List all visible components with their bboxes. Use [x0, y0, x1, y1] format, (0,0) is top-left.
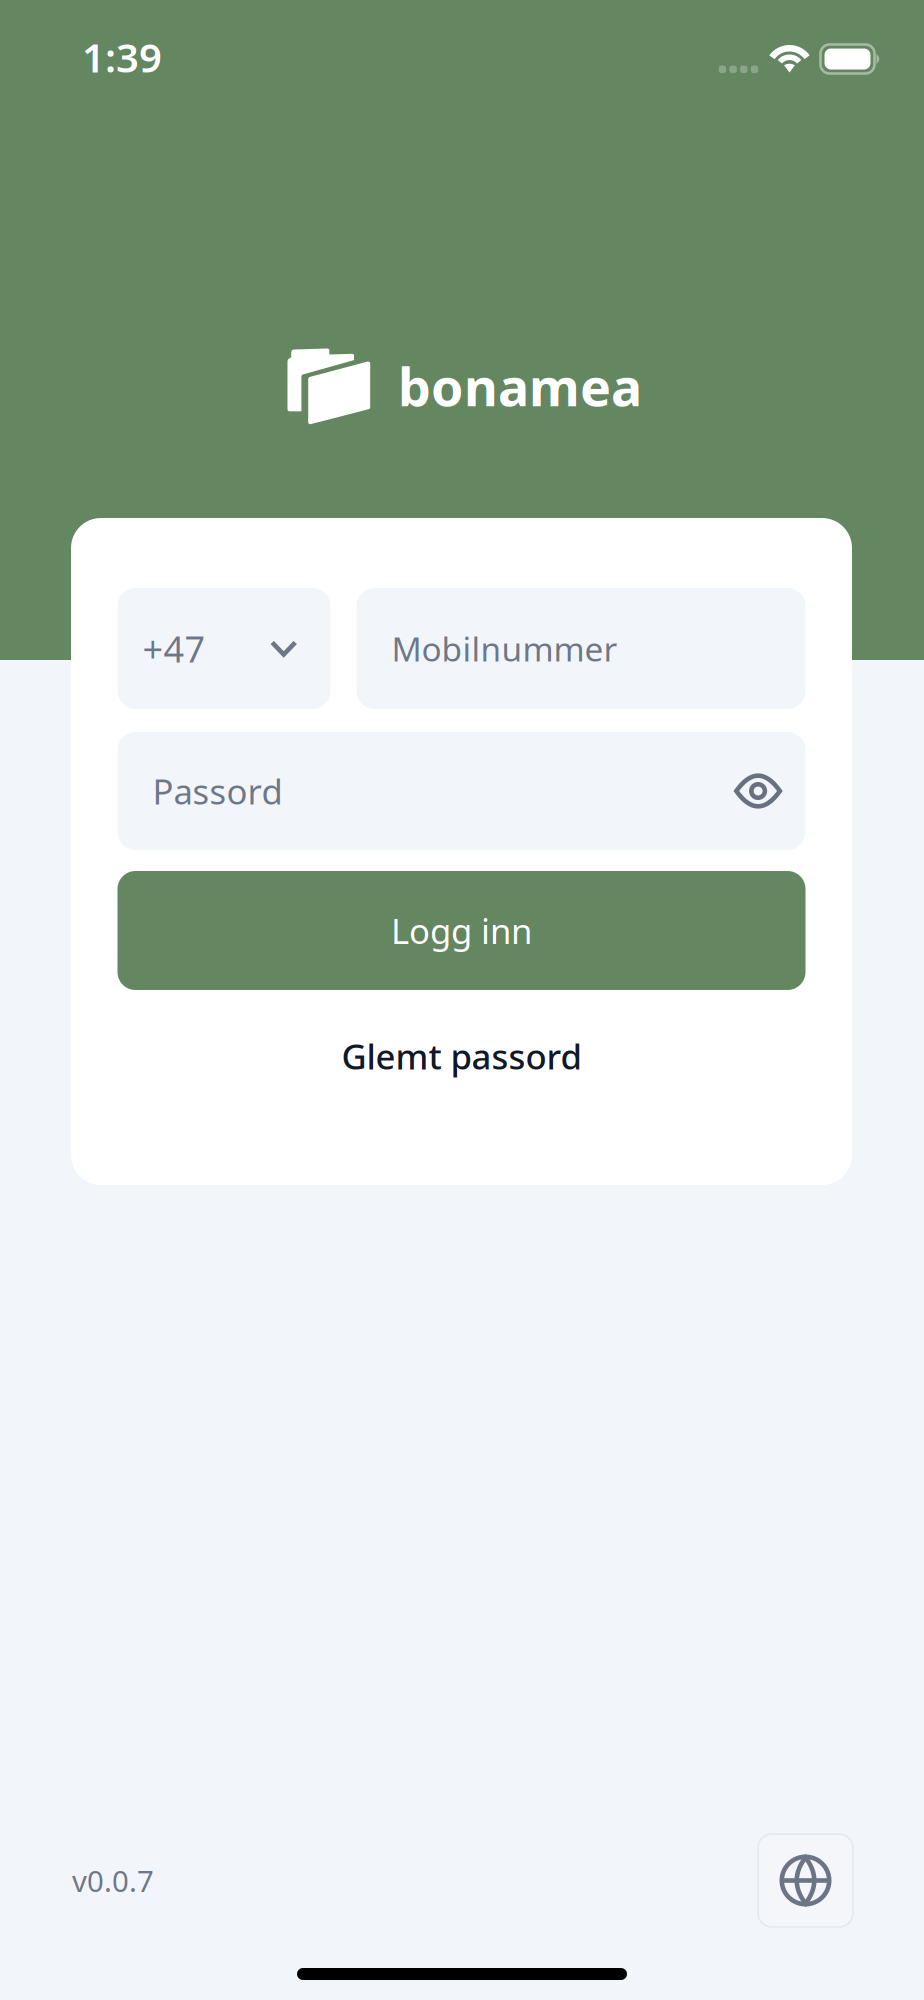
button[interactable]: Change language	[758, 1834, 853, 1927]
staticText: 1:39	[82, 30, 162, 83]
button[interactable]: Passord	[117, 732, 805, 850]
staticText: Mobilnummer	[391, 626, 617, 671]
staticText: Logg inn	[391, 907, 532, 953]
staticText: Passord	[152, 768, 282, 814]
staticText: Glemt passord	[341, 1033, 581, 1079]
button[interactable]: Logg inn	[117, 871, 805, 990]
staticText: bonamea	[398, 351, 642, 421]
button[interactable]: Mobilnummer	[356, 588, 805, 709]
button[interactable]: +47	[117, 588, 330, 709]
staticText: v0.0.7	[72, 1861, 154, 1900]
button[interactable]: Glemt passord	[117, 1014, 805, 1098]
staticText: +47	[142, 625, 205, 672]
